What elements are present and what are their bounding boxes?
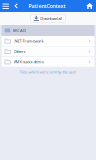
staticText: Download all xyxy=(40,16,62,21)
staticText: Others xyxy=(13,49,25,54)
staticText: PatientContext xyxy=(28,2,65,10)
staticText: Files which were sent by the user xyxy=(19,69,76,75)
button[interactable]: Home xyxy=(84,0,96,12)
button[interactable]: VMX nuxxx demo xyxy=(1,57,94,67)
button[interactable]: .NET Framework xyxy=(1,36,94,46)
staticText: VMX nuxxx demo xyxy=(13,59,43,64)
staticText: .NET Framework xyxy=(13,38,43,44)
button[interactable]: Download all xyxy=(31,15,65,22)
staticText: MCAD xyxy=(13,28,26,33)
button[interactable]: Back xyxy=(11,0,21,12)
button[interactable]: Others xyxy=(1,46,94,56)
button[interactable]: Menu xyxy=(0,0,11,12)
button[interactable]: Files which were sent by the user xyxy=(19,69,76,75)
